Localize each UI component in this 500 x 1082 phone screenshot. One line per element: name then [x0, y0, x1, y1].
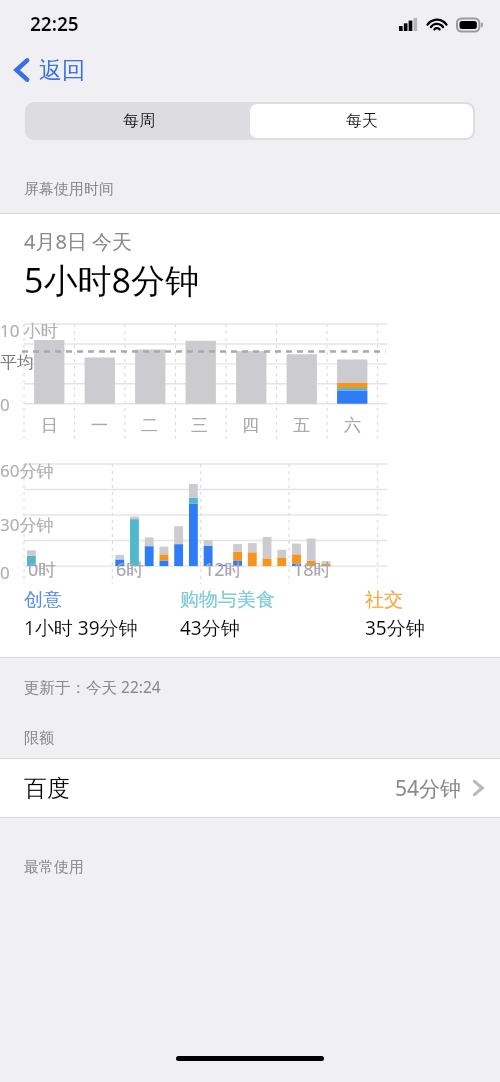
button[interactable]: 每天 [250, 104, 473, 138]
staticText: 限额 [24, 729, 54, 748]
staticText: 54分钟 [395, 774, 462, 803]
staticText: 4月8日 今天 [24, 228, 133, 255]
staticText: 0时 [28, 557, 57, 582]
staticText: 创意 [24, 588, 62, 612]
staticText: 每周 [123, 111, 155, 131]
staticText: 社交 [365, 588, 403, 612]
staticText: 60分钟 [0, 459, 54, 482]
staticText: 5小时8分钟 [24, 257, 199, 303]
staticText: 30分钟 [0, 513, 54, 536]
staticText: 屏幕使用时间 [24, 180, 114, 199]
staticText: 最常使用 [24, 858, 84, 877]
staticText: 六 [344, 415, 361, 436]
button[interactable]: 返回 [0, 48, 101, 92]
staticText: 一 [91, 415, 108, 436]
staticText: 日 [41, 415, 58, 436]
staticText: 0 [0, 393, 10, 416]
staticText: 购物与美食 [180, 588, 275, 612]
staticText: 更新于：今天 22:24 [24, 676, 161, 697]
staticText: 35分钟 [365, 615, 425, 641]
staticText: 返回 [39, 56, 85, 85]
staticText: 6时 [116, 557, 145, 582]
staticText: 每天 [346, 111, 378, 131]
staticText: 三 [191, 415, 208, 436]
staticText: 百度 [24, 774, 70, 803]
staticText: 10 小时 [0, 319, 58, 342]
staticText: 五 [293, 415, 310, 436]
staticText: 二 [141, 415, 158, 436]
button[interactable]: 每周 [27, 104, 250, 138]
staticText: 12时 [204, 557, 243, 582]
staticText: 22:25 [30, 11, 79, 37]
staticText: 1小时 39分钟 [24, 615, 138, 641]
staticText: 0 [0, 561, 10, 584]
staticText: 43分钟 [180, 615, 240, 641]
staticText: 18时 [293, 557, 332, 582]
button[interactable]: 百度 [0, 759, 500, 817]
staticText: 四 [242, 415, 259, 436]
staticText: 平均 [0, 352, 34, 373]
